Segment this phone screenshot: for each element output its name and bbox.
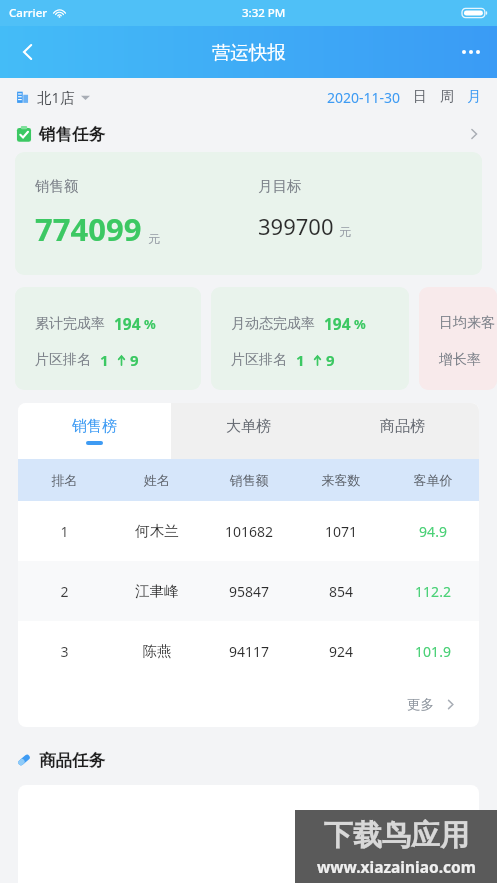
staticText: 1071 xyxy=(295,522,387,541)
staticText: 854 xyxy=(295,582,387,601)
staticText: 陈燕 xyxy=(111,642,203,660)
button[interactable]: 周 xyxy=(440,88,454,106)
button[interactable]: 累计完成率 xyxy=(15,287,201,390)
button[interactable]: 月动态完成率 xyxy=(211,287,409,390)
button[interactable]: More options xyxy=(445,26,497,78)
staticText: 月动态完成率 xyxy=(231,315,315,333)
staticText: 日均来客 xyxy=(439,314,495,332)
staticText: 1 xyxy=(296,350,305,370)
staticText: 95847 xyxy=(203,582,295,601)
staticText: 94117 xyxy=(203,642,295,661)
staticText: www.xiazainiao.com xyxy=(317,856,476,877)
button[interactable]: 3 xyxy=(18,621,479,681)
staticText: 增长率 xyxy=(439,351,481,369)
staticText: 片区排名 xyxy=(35,351,91,369)
staticText: 销售额 xyxy=(203,472,295,488)
staticText: 月目标 xyxy=(258,177,302,195)
staticText: 194 xyxy=(324,313,351,334)
staticText: 片区排名 xyxy=(231,351,287,369)
staticText: 924 xyxy=(295,642,387,661)
staticText: 销售任务 xyxy=(39,124,105,145)
staticText: 客单价 xyxy=(387,472,479,488)
staticText: 774099 xyxy=(35,208,142,250)
staticText: 下载鸟应用 xyxy=(324,817,469,854)
staticText: 北1店 xyxy=(37,87,75,107)
staticText: % xyxy=(144,315,156,333)
staticText: Carrier xyxy=(9,5,48,21)
staticText: 姓名 xyxy=(111,472,203,488)
button[interactable]: 2 xyxy=(18,561,479,621)
staticText: 商品任务 xyxy=(39,750,105,771)
staticText: 1 xyxy=(100,350,109,370)
staticText: 101682 xyxy=(203,522,295,541)
button[interactable]: 销售榜 xyxy=(18,403,171,459)
button[interactable]: 日均来客 xyxy=(419,287,497,390)
staticText: 3:32 PM xyxy=(242,5,286,21)
button[interactable]: 大单榜 xyxy=(171,403,325,459)
staticText: 194 xyxy=(114,313,141,334)
staticText: 江聿峰 xyxy=(111,582,203,600)
button[interactable]: 月 xyxy=(467,88,481,106)
staticText: 大单榜 xyxy=(226,417,271,436)
staticText: 销售额 xyxy=(35,177,79,195)
staticText: 3 xyxy=(18,642,111,661)
staticText: 1 xyxy=(18,522,111,541)
button[interactable]: 1 xyxy=(18,501,479,561)
button[interactable]: 更多 xyxy=(18,681,479,727)
button[interactable]: 北1店 xyxy=(16,87,90,107)
button[interactable]: 销售任务 xyxy=(0,116,497,152)
button[interactable]: 销售额 xyxy=(15,152,482,275)
staticText: 101.9 xyxy=(387,642,479,661)
staticText: 399700 xyxy=(258,211,334,241)
staticText: 112.2 xyxy=(387,582,479,601)
button[interactable]: Back xyxy=(0,26,56,78)
button[interactable]: 2020-11-30 xyxy=(327,88,401,107)
button[interactable]: 商品任务 xyxy=(0,743,497,777)
staticText: 来客数 xyxy=(295,472,387,488)
staticText: 排名 xyxy=(18,472,111,488)
staticText: 何木兰 xyxy=(111,522,203,540)
button[interactable]: 商品榜 xyxy=(325,403,479,459)
staticText: % xyxy=(354,315,366,333)
button[interactable]: 日 xyxy=(413,88,427,106)
staticText: 累计完成率 xyxy=(35,315,105,333)
staticText: 元 xyxy=(148,231,160,246)
staticText: 9 xyxy=(130,350,139,370)
staticText: 营运快报 xyxy=(212,41,286,64)
staticText: 销售榜 xyxy=(72,417,117,436)
staticText: 9 xyxy=(326,350,335,370)
staticText: 商品榜 xyxy=(380,417,425,436)
staticText: 94.9 xyxy=(387,522,479,541)
staticText: 2 xyxy=(18,582,111,601)
staticText: 元 xyxy=(339,224,351,239)
staticText: 更多 xyxy=(407,696,434,713)
